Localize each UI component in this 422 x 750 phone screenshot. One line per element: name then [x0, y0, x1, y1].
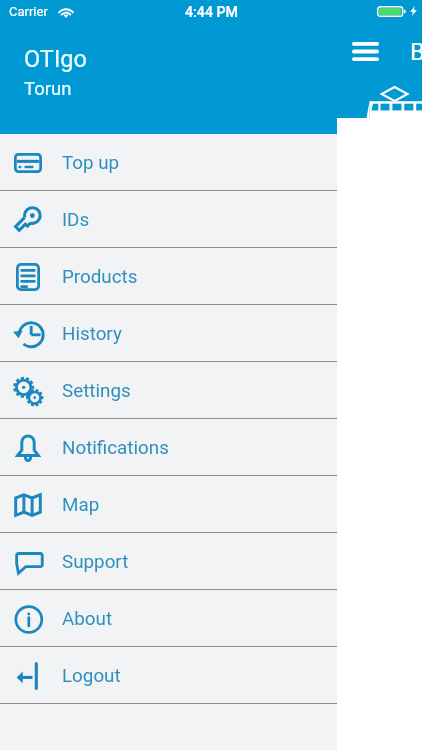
staticText: Map — [62, 494, 100, 516]
button[interactable]: Support — [0, 533, 337, 590]
button[interactable]: History — [0, 305, 337, 362]
staticText: IDs — [62, 209, 90, 231]
staticText: Top up — [62, 152, 120, 174]
staticText: Torun — [24, 78, 72, 100]
staticText: Logout — [62, 665, 121, 687]
staticText: Settings — [62, 380, 131, 402]
button[interactable]: Open navigation menu — [343, 29, 388, 74]
button[interactable]: Settings — [0, 362, 337, 419]
button[interactable]: Notifications — [0, 419, 337, 476]
staticText: Products — [62, 266, 138, 288]
button[interactable]: Top up — [0, 134, 337, 191]
button[interactable]: Logout — [0, 647, 337, 704]
button[interactable]: IDs — [0, 191, 337, 248]
staticText: Support — [62, 551, 129, 573]
button[interactable]: Map — [0, 476, 337, 533]
staticText: Carrier — [9, 4, 48, 19]
staticText: 4:44 PM — [185, 4, 238, 21]
staticText: OTIgo — [24, 45, 87, 73]
button[interactable]: Products — [0, 248, 337, 305]
button[interactable]: About — [0, 590, 337, 647]
staticText: History — [62, 323, 122, 345]
staticText: B — [410, 38, 422, 66]
staticText: About — [62, 608, 113, 630]
staticText: Notifications — [62, 437, 169, 459]
